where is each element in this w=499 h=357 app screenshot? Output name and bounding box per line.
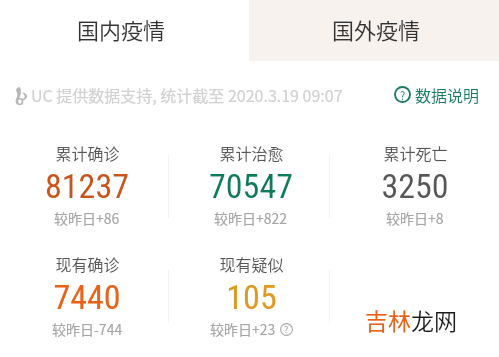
staticText: 现有确诊	[55, 252, 120, 275]
staticText: 较昨日+8	[386, 208, 444, 228]
staticText: 累计确诊	[55, 141, 120, 164]
staticText: 国内疫情	[77, 13, 166, 45]
staticText: 105	[226, 277, 277, 317]
staticText: UC 提供数据支持, 统计截至 2020.3.19 09:07	[31, 83, 343, 106]
button[interactable]: More information	[280, 323, 293, 336]
staticText: 81237	[45, 166, 129, 206]
button[interactable]: ?	[394, 83, 480, 106]
staticText: 较昨日+23	[210, 319, 276, 339]
staticText: 3250	[381, 166, 449, 206]
button[interactable]: 国外疫情	[249, 0, 499, 61]
staticText: 累计死亡	[383, 141, 448, 164]
staticText: 较昨日+822	[214, 208, 288, 228]
staticText: 吉林	[365, 303, 411, 336]
staticText: 数据说明	[415, 83, 480, 106]
staticText: 龙网	[411, 303, 457, 336]
staticText: 较昨日+86	[54, 208, 120, 228]
staticText: 现有疑似	[219, 252, 284, 275]
button[interactable]: 国内疫情	[0, 0, 249, 61]
staticText: 国外疫情	[332, 13, 421, 45]
staticText: 7440	[53, 277, 121, 317]
staticText: 较昨日-744	[52, 319, 123, 339]
staticText: ?	[284, 323, 289, 336]
staticText: 70547	[209, 166, 293, 206]
staticText: 累计治愈	[219, 141, 284, 164]
staticText: ?	[400, 87, 406, 103]
other: UC browser	[12, 85, 29, 104]
